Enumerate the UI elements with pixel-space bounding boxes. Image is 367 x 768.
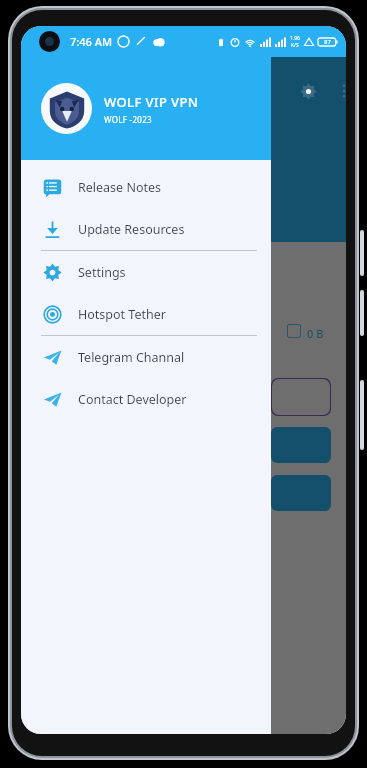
button[interactable]: More options [333, 80, 346, 102]
staticText: 7:46 AM [70, 34, 113, 49]
staticText: Release Notes [78, 179, 162, 196]
button[interactable]: Telegram Channal [21, 336, 271, 378]
button[interactable]: Update Resources [21, 208, 271, 250]
staticText: Update Resources [78, 221, 185, 238]
button[interactable]: Settings [297, 80, 319, 102]
staticText: WOLF VIP VPN [104, 93, 199, 111]
staticText: Hotspot Tether [78, 306, 166, 323]
button[interactable]: Settings [21, 251, 271, 293]
button[interactable]: Hotspot Tether [21, 293, 271, 335]
button[interactable]: Contact Developer [21, 378, 271, 420]
staticText: K/S [291, 42, 299, 49]
staticText: 0 B [307, 326, 324, 341]
staticText: Telegram Channal [78, 349, 185, 366]
staticText: Settings [78, 264, 126, 281]
staticText: WOLF -2023 [104, 114, 152, 125]
staticText: 87 [324, 38, 331, 46]
button[interactable]: Release Notes [21, 166, 271, 208]
staticText: Contact Developer [78, 391, 187, 408]
staticText: 1.96 [290, 35, 300, 42]
